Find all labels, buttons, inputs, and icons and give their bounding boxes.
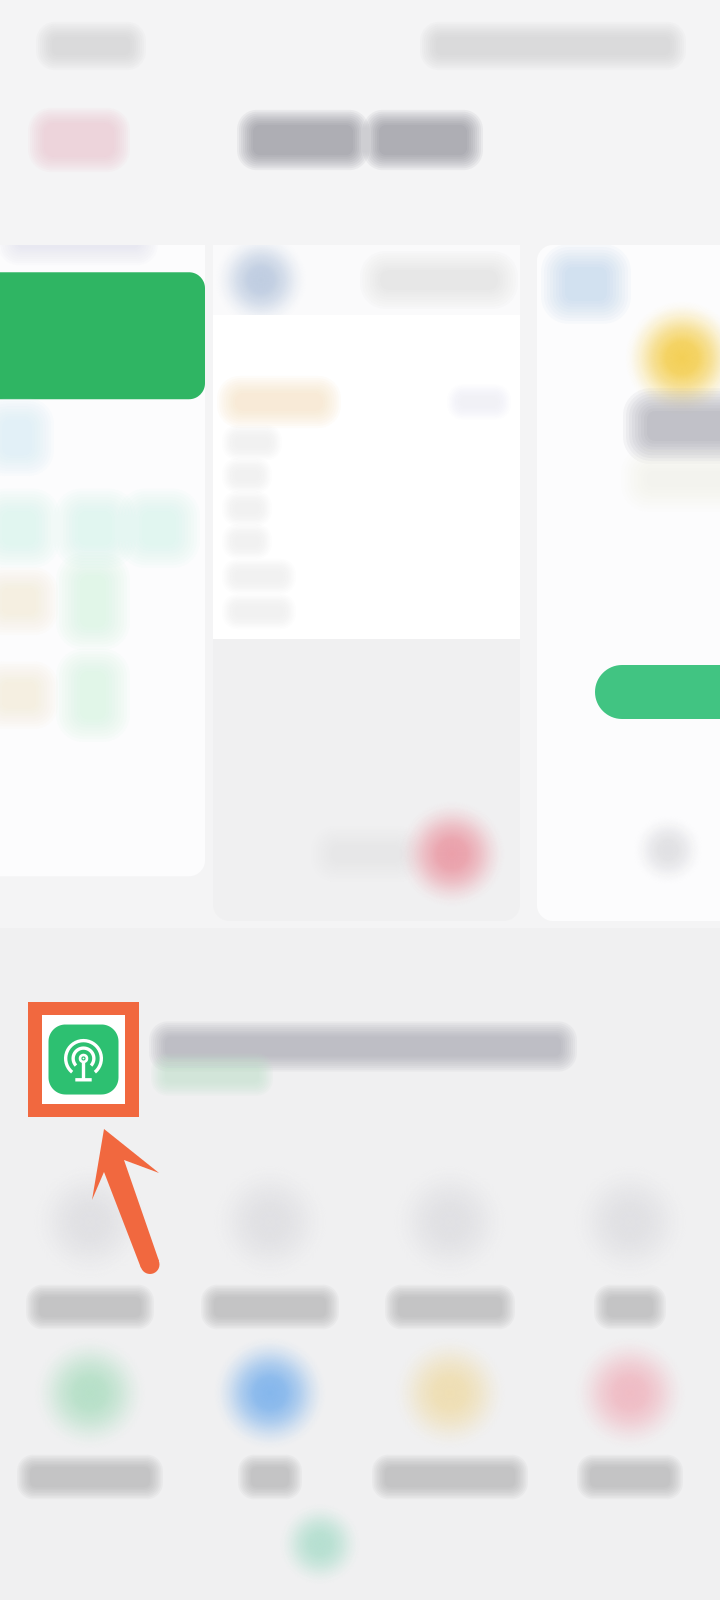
button[interactable]: More <box>540 1191 720 1317</box>
button[interactable]: Action 3 <box>360 1367 540 1487</box>
button[interactable]: Action 1 <box>0 1367 180 1487</box>
button[interactable]: Share target 1 <box>0 1191 180 1317</box>
button[interactable]: Share target 3 <box>360 1191 540 1317</box>
button[interactable]: Back <box>0 111 114 169</box>
button[interactable]: Action 2 <box>180 1367 360 1487</box>
button[interactable]: Action 4 <box>540 1367 720 1487</box>
button[interactable]: Share target 2 <box>180 1191 360 1317</box>
